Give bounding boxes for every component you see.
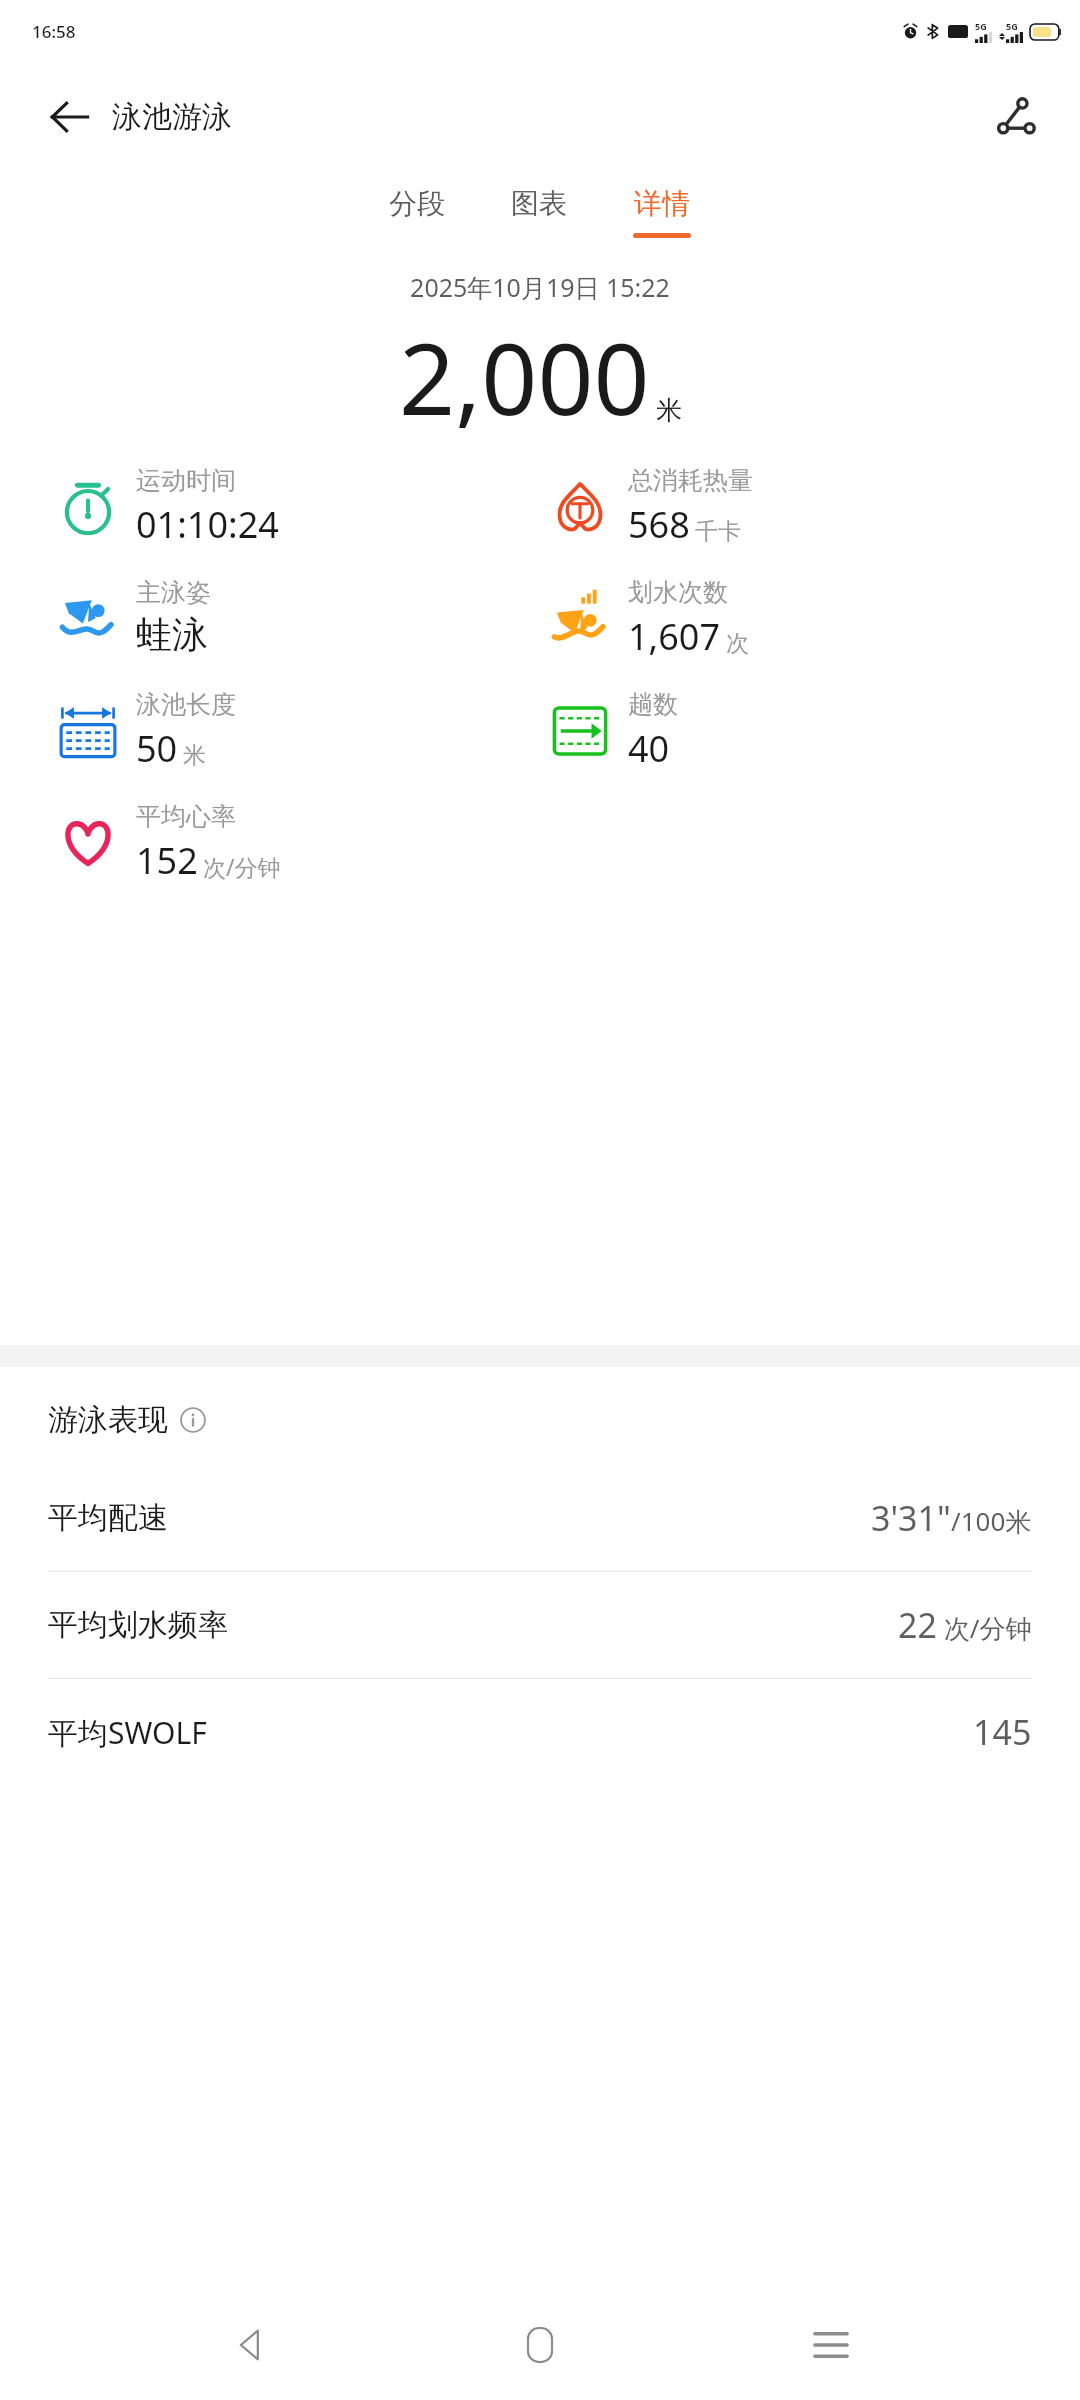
staticText: 米 [183, 741, 206, 770]
button[interactable]: 游泳表现 [0, 1367, 1080, 1465]
staticText: 3'31" [871, 1495, 951, 1541]
staticText: 详情 [634, 186, 690, 221]
staticText: 22 [898, 1602, 937, 1648]
button[interactable]: 平均SWOLF [0, 1679, 1080, 1785]
staticText: 主泳姿 [136, 577, 211, 608]
staticText: 总消耗热量 [628, 465, 753, 496]
staticText: 5G [1006, 20, 1018, 32]
staticText: 1,607 [628, 612, 721, 661]
staticText: 2,000 [399, 310, 650, 443]
staticText: 2025年10月19日 15:22 [0, 270, 1080, 304]
staticText: 运动时间 [136, 465, 236, 496]
staticText: 平均划水频率 [48, 1606, 228, 1644]
button[interactable]: Back [44, 91, 96, 143]
staticText: 145 [973, 1709, 1032, 1755]
button[interactable]: 平均划水频率 [0, 1572, 1080, 1678]
staticText: 次/分钟 [937, 1610, 1032, 1646]
staticText: 图表 [511, 186, 567, 221]
staticText: 泳池游泳 [112, 98, 232, 136]
staticText: 平均配速 [48, 1499, 168, 1537]
staticText: /100米 [951, 1503, 1032, 1539]
staticText: 划水次数 [628, 577, 728, 608]
button[interactable]: Share [988, 89, 1044, 145]
staticText: 568 [628, 500, 690, 549]
button[interactable]: 图表 [495, 178, 583, 246]
staticText: 分段 [389, 186, 445, 221]
staticText: 16:58 [32, 20, 76, 43]
button[interactable]: Home [498, 2303, 582, 2387]
staticText: 千卡 [695, 517, 741, 546]
staticText: 泳池长度 [136, 689, 236, 720]
staticText: 平均心率 [136, 801, 236, 832]
staticText: 50 [136, 724, 178, 773]
staticText: 152 [136, 836, 198, 885]
staticText: 趟数 [628, 689, 678, 720]
staticText: 次/分钟 [203, 851, 281, 882]
button[interactable]: 平均配速 [0, 1465, 1080, 1571]
button[interactable]: 详情 [617, 178, 707, 246]
staticText: 40 [628, 724, 670, 773]
staticText: 次 [726, 629, 749, 658]
staticText: 蛙泳 [136, 612, 208, 657]
staticText: 5G [975, 20, 987, 32]
button[interactable]: Recent apps [789, 2303, 873, 2387]
staticText: 米 [656, 394, 682, 427]
staticText: 01:10:24 [136, 500, 279, 549]
button[interactable]: 分段 [373, 178, 461, 246]
staticText: 平均SWOLF [48, 1712, 207, 1753]
button[interactable]: Back [207, 2303, 291, 2387]
staticText: 游泳表现 [48, 1401, 168, 1439]
